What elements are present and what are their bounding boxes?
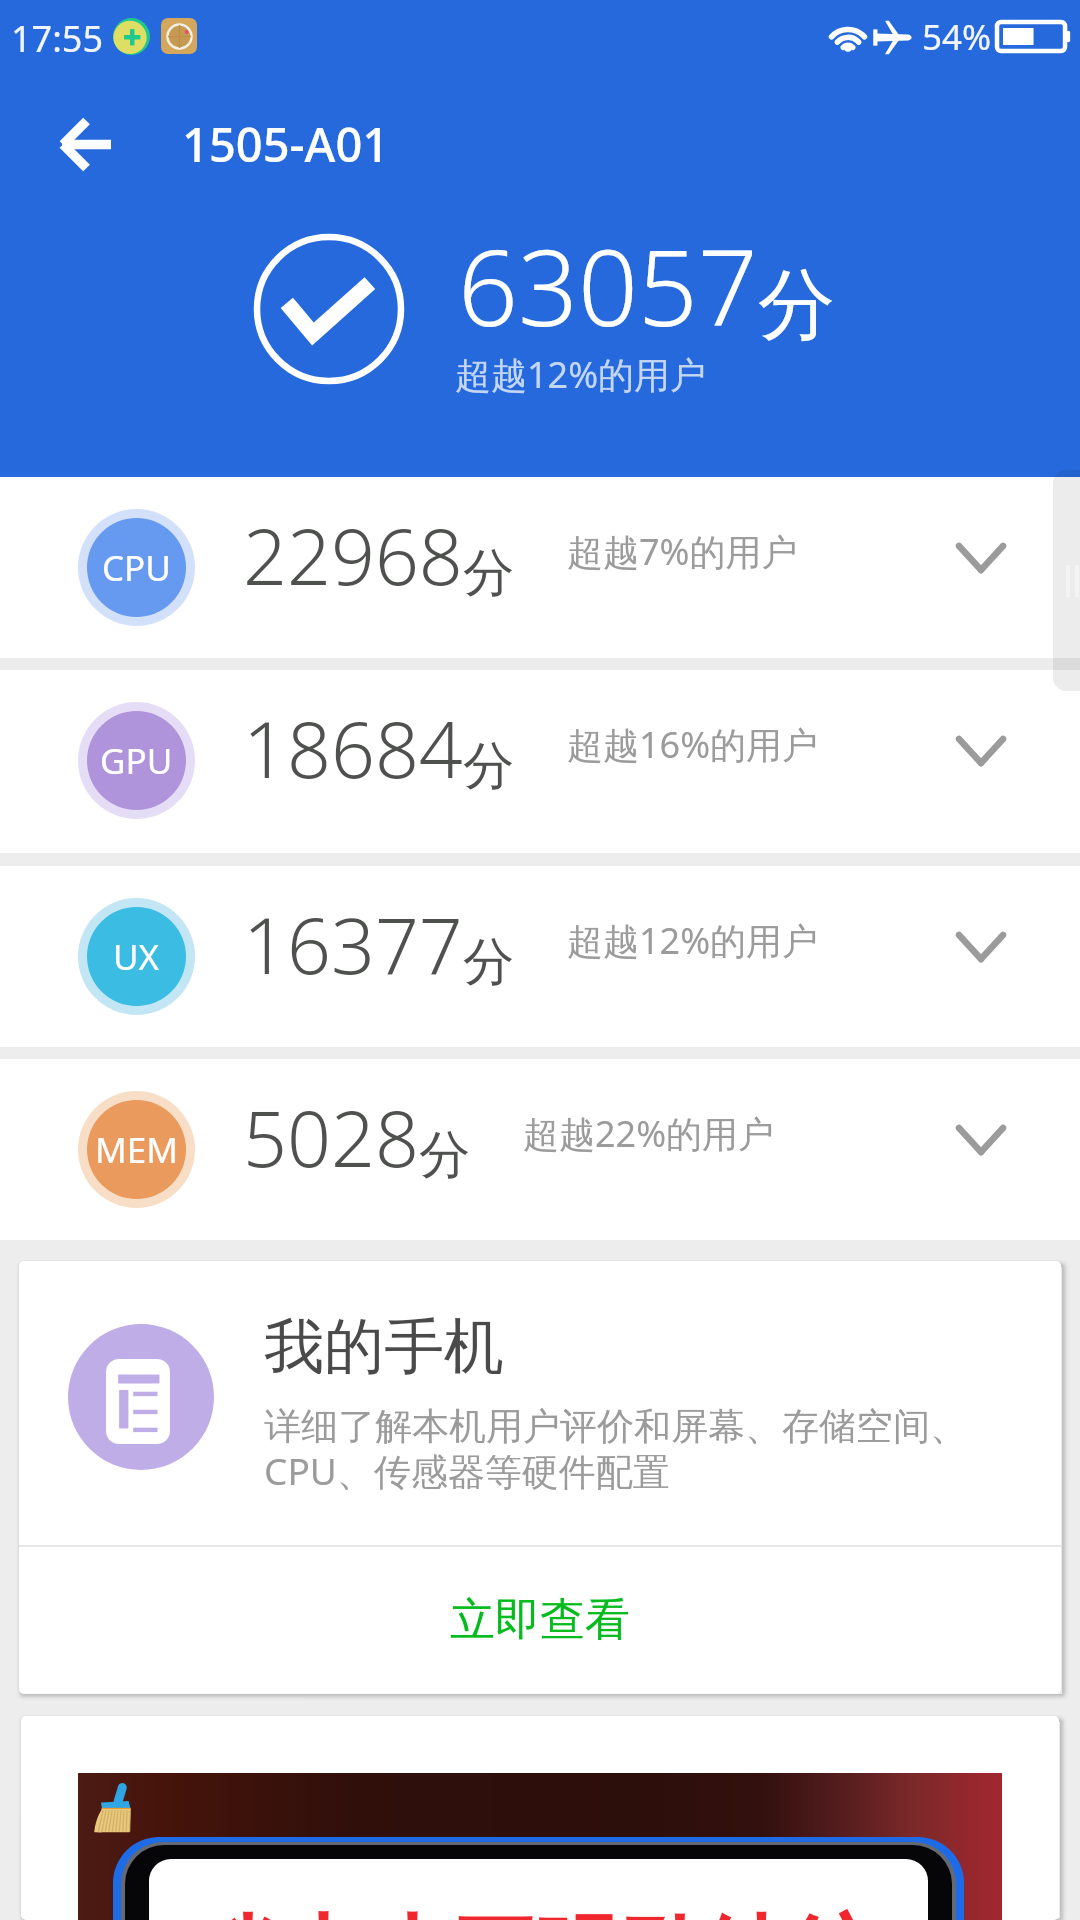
staticText: 分 [463,541,514,605]
staticText: 立即查看 [450,1592,630,1649]
staticText: 超越12%的用户 [455,350,707,399]
button[interactable]: UX [0,866,1080,1047]
staticText: 1505-A01 [182,112,390,176]
staticText: UX [113,933,160,981]
staticText: 22968 [243,503,463,608]
button[interactable]: Back [28,88,143,200]
staticText: 分 [463,734,514,798]
staticText: 超越7%的用户 [567,527,798,576]
staticText: 18684 [243,696,463,801]
staticText: 54% [922,13,992,61]
staticText: 分 [419,1123,470,1187]
staticText: 省电大王强劲续航 [201,1903,873,1920]
staticText: 超越22%的用户 [523,1109,775,1158]
button[interactable]: Assistive touch [1053,470,1080,691]
button[interactable]: CPU [0,477,1080,658]
staticText: 我的手机 [264,1309,504,1385]
staticText: 16377 [243,892,463,997]
staticText: 5028 [243,1085,419,1190]
staticText: CPU [102,544,171,592]
button[interactable]: GPU [0,670,1080,853]
button[interactable]: MEM [0,1059,1080,1240]
button[interactable]: 立即查看 [19,1547,1061,1694]
staticText: GPU [100,737,173,785]
button[interactable]: 我的手机 [19,1261,1061,1545]
staticText: 分 [463,930,514,994]
staticText: MEM [95,1126,178,1174]
staticText: 分 [758,257,835,354]
button[interactable]: 省电大王强劲续航 [21,1716,1059,1920]
staticText: 17:55 [11,14,104,63]
staticText: 超越12%的用户 [567,916,819,965]
staticText: 超越16%的用户 [567,720,819,769]
staticText: 63057 [458,214,758,357]
staticText: 详细了解本机用户评价和屏幕、存储空间、 CPU、传感器等硬件配置 [264,1403,967,1496]
